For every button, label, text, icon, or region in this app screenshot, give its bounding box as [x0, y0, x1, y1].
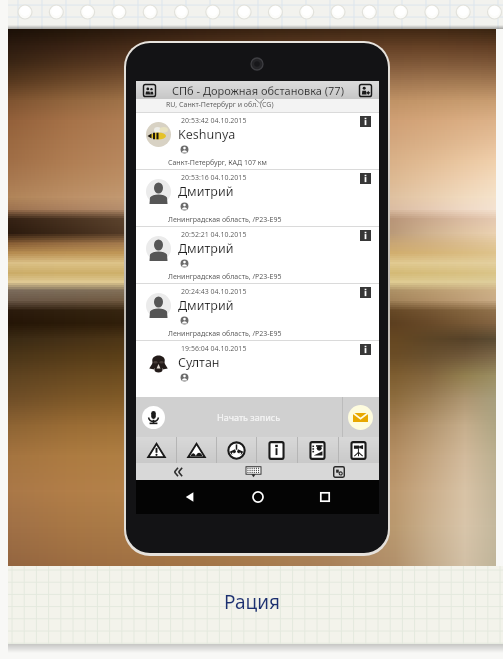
- staticText: Рация: [224, 589, 280, 615]
- button[interactable]: Info: [360, 116, 371, 127]
- staticText: Ленинградская область, /Р23-Е95: [168, 272, 282, 282]
- staticText: СПб - Дорожная обстановка (77): [172, 83, 344, 98]
- button[interactable]: Warning: [136, 437, 176, 463]
- staticText: Султан: [178, 354, 220, 371]
- staticText: Дмитрий: [178, 240, 234, 257]
- button[interactable]: 20:53:16 04.10.2015: [136, 169, 379, 226]
- staticText: 20:53:42 04.10.2015: [181, 116, 247, 126]
- staticText: RU, Санкт-Петербург и обл. (CG): [166, 100, 274, 110]
- staticText: 20:53:16 04.10.2015: [181, 173, 247, 183]
- staticText: Ленинградская область, /Р23-Е95: [168, 329, 282, 339]
- button[interactable]: 20:53:42 04.10.2015: [136, 112, 379, 169]
- button[interactable]: Info: [360, 344, 371, 355]
- button[interactable]: Patrol: [297, 437, 338, 463]
- button[interactable]: Recents: [318, 490, 332, 504]
- button[interactable]: 20:24:43 04.10.2015: [136, 283, 379, 340]
- button[interactable]: Info: [360, 173, 371, 184]
- button[interactable]: Person location: [359, 84, 372, 97]
- staticText: Санкт-Петербург, КАД 107 км: [168, 158, 267, 168]
- staticText: Дмитрий: [178, 183, 234, 200]
- staticText: Ленинградская область, /Р23-Е95: [168, 215, 282, 225]
- button[interactable]: Switch app: [333, 466, 345, 478]
- staticText: 20:52:21 04.10.2015: [181, 230, 247, 240]
- button[interactable]: Back: [183, 490, 197, 504]
- button[interactable]: Home: [251, 490, 265, 504]
- staticText: Дмитрий: [178, 297, 234, 314]
- button[interactable]: Accident: [216, 437, 256, 463]
- button[interactable]: Keyboard: [245, 463, 262, 480]
- button[interactable]: Record: [142, 406, 165, 429]
- button[interactable]: Camera: [338, 437, 379, 463]
- button[interactable]: Info: [360, 287, 371, 298]
- button[interactable]: 20:52:21 04.10.2015: [136, 226, 379, 283]
- staticText: 19:56:04 04.10.2015: [181, 344, 247, 354]
- button[interactable]: Bumps: [176, 437, 216, 463]
- staticText: 20:24:43 04.10.2015: [181, 287, 247, 297]
- button[interactable]: 19:56:04 04.10.2015: [136, 340, 379, 397]
- staticText: Начать запись: [217, 411, 281, 423]
- button[interactable]: Messages: [348, 405, 373, 430]
- button[interactable]: Back: [170, 464, 186, 480]
- button[interactable]: Contacts: [143, 84, 156, 97]
- button[interactable]: Info: [256, 437, 297, 463]
- staticText: Keshunya: [178, 126, 236, 143]
- button[interactable]: Info: [360, 230, 371, 241]
